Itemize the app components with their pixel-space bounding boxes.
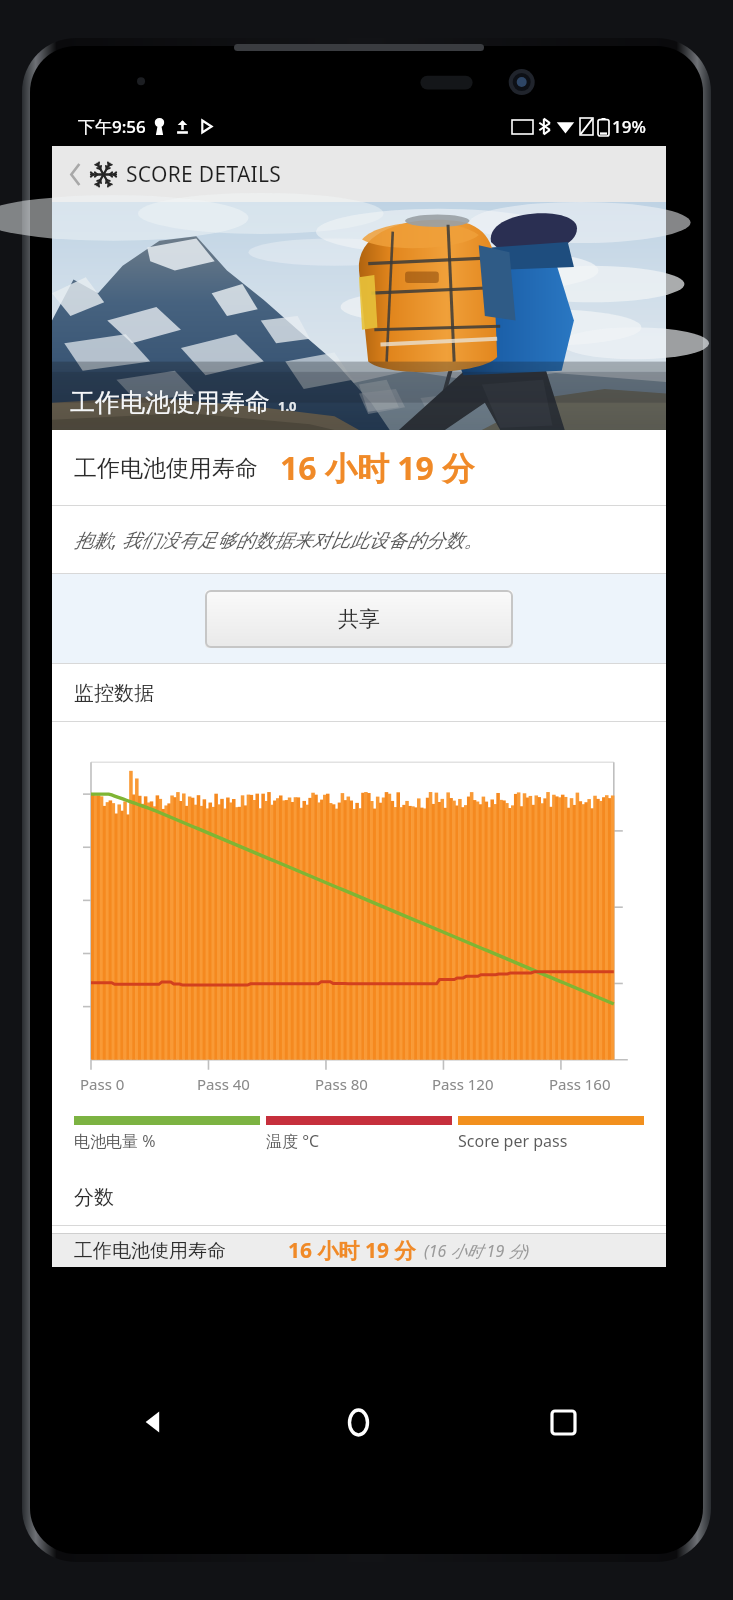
staticText: (16 小时 19 分)	[424, 1240, 530, 1262]
staticText: 1.0	[278, 397, 297, 415]
button[interactable]: Recent apps	[461, 1374, 666, 1470]
button[interactable]: Home	[256, 1374, 461, 1470]
staticText: 温度 °C	[266, 1130, 320, 1152]
staticText: Pass 0	[80, 1074, 125, 1094]
button[interactable]: 工作电池使用寿命	[52, 1233, 666, 1267]
staticText: 抱歉, 我们没有足够的数据来对比此设备的分数。	[74, 527, 652, 553]
staticText: 工作电池使用寿命	[74, 454, 258, 483]
button[interactable]: 监控数据	[52, 664, 666, 722]
staticText: Pass 160	[549, 1074, 611, 1094]
staticText: 16 小时 19 分	[280, 446, 475, 490]
staticText: 分数	[74, 1185, 114, 1210]
staticText: 共享	[338, 606, 380, 632]
button[interactable]: 温度 °C	[266, 1116, 452, 1152]
staticText: 工作电池使用寿命	[70, 387, 270, 418]
staticText: Score per pass	[458, 1130, 568, 1152]
staticText: Pass 40	[197, 1074, 250, 1094]
button[interactable]: Score per pass	[458, 1116, 644, 1152]
staticText: 工作电池使用寿命	[74, 1239, 226, 1263]
staticText: 电池电量 %	[74, 1130, 156, 1152]
button[interactable]: 电池电量 %	[74, 1116, 260, 1152]
button[interactable]: Back	[52, 146, 666, 202]
staticText: 下午9:56	[78, 115, 146, 138]
other: Back	[62, 161, 88, 187]
staticText: 16 小时 19 分	[288, 1236, 416, 1265]
staticText: 监控数据	[74, 681, 154, 706]
staticText: SCORE DETAILS	[126, 160, 282, 189]
staticText: Pass 80	[315, 1074, 368, 1094]
staticText: Pass 120	[432, 1074, 494, 1094]
button[interactable]: 分数	[52, 1168, 666, 1226]
staticText: 19%	[612, 115, 646, 138]
button[interactable]: Back	[52, 1374, 256, 1470]
button[interactable]: 共享	[205, 590, 513, 648]
